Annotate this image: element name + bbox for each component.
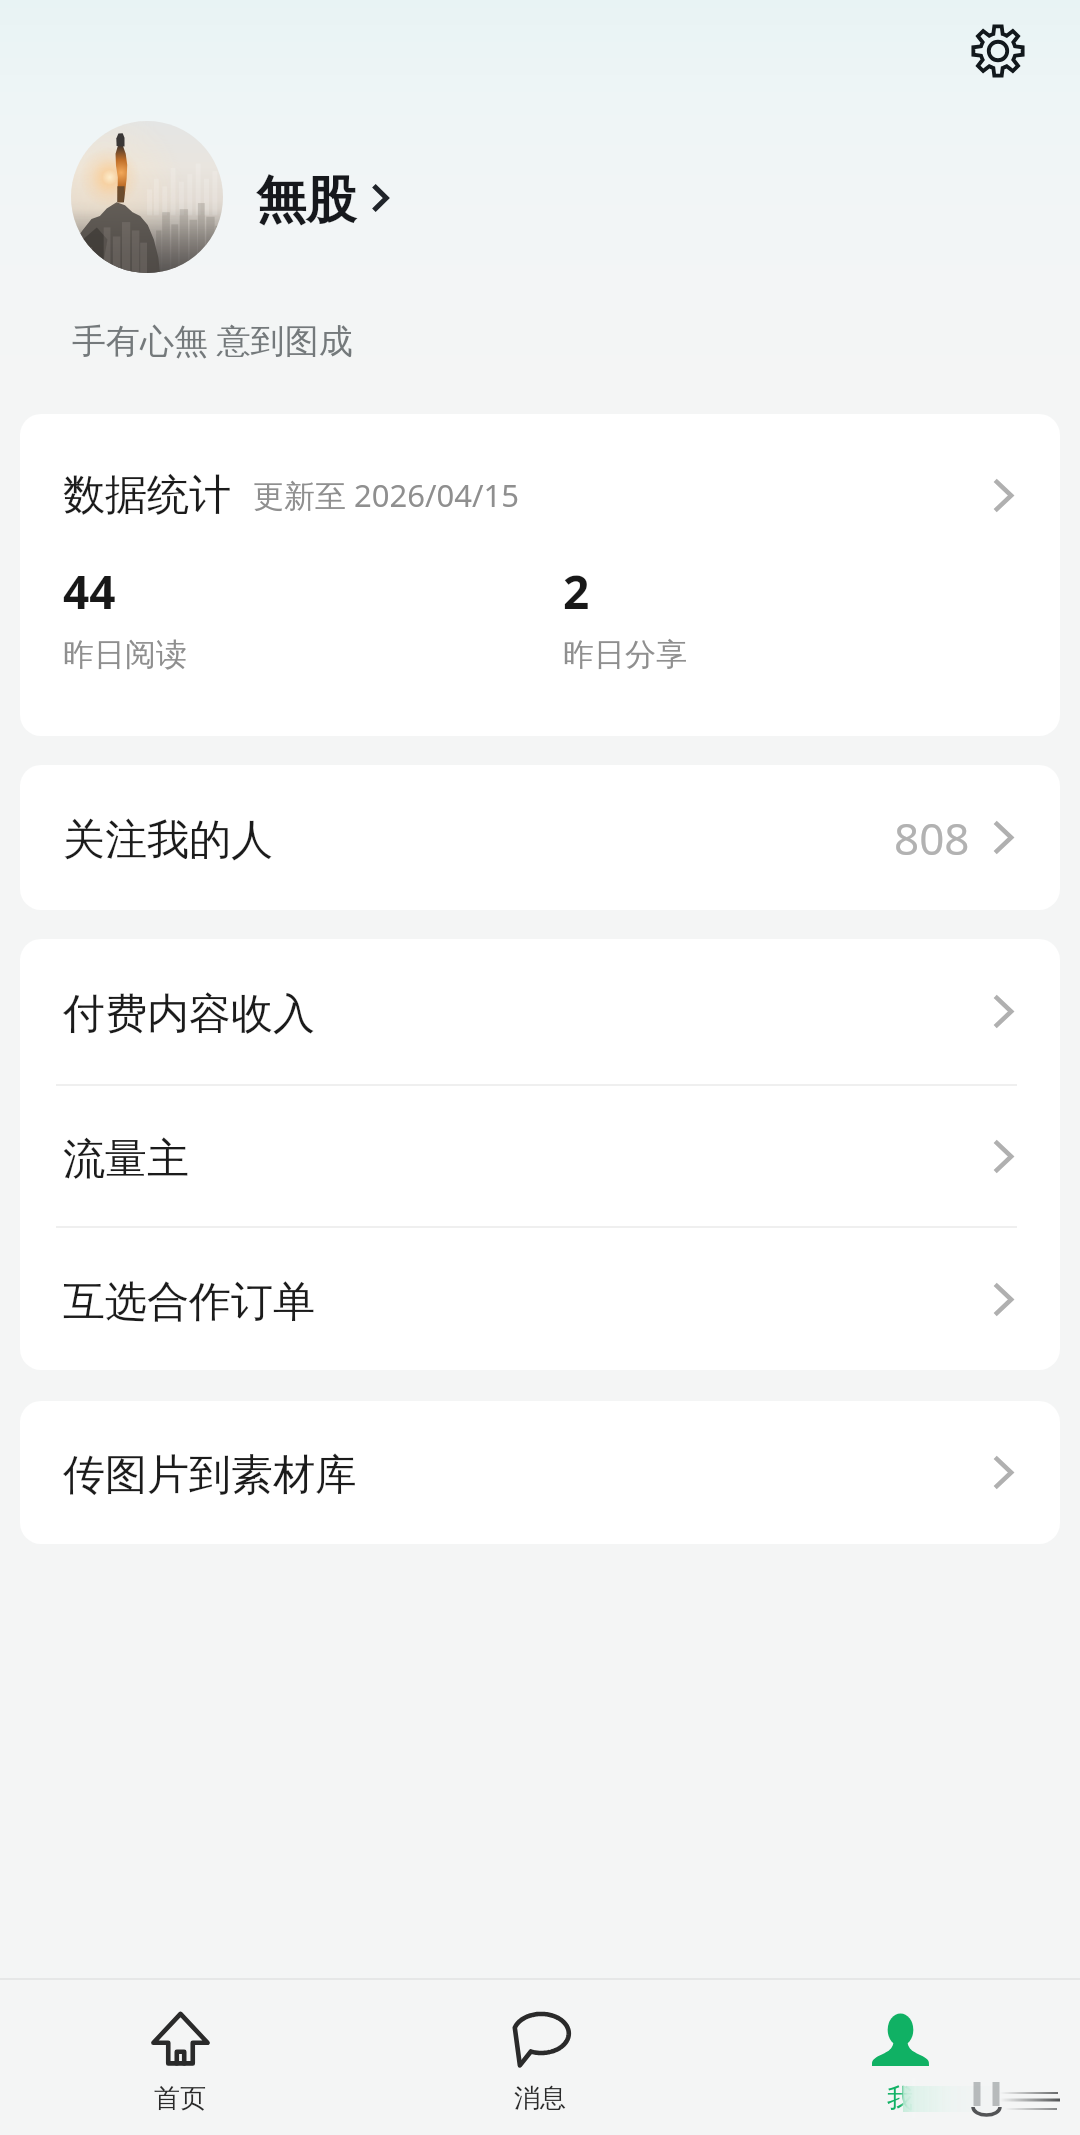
- staticText: 手有心無 意到图成: [72, 317, 353, 363]
- staticText: 付费内容收入: [63, 988, 315, 1041]
- button[interactable]: Settings: [944, 0, 1052, 105]
- button[interactable]: 付费内容收入: [20, 939, 1060, 1084]
- staticText: 首页: [154, 2082, 206, 2115]
- staticText: 流量主: [63, 1133, 189, 1186]
- staticText: 808: [894, 808, 970, 868]
- staticText: 更新至 2026/04/15: [253, 474, 519, 516]
- button[interactable]: 消息: [360, 1980, 720, 2135]
- button[interactable]: 传图片到素材库: [20, 1401, 1060, 1544]
- staticText: 消息: [514, 2082, 566, 2115]
- staticText: 互选合作订单: [63, 1276, 315, 1329]
- staticText: 我: [887, 2082, 913, 2115]
- staticText: 传图片到素材库: [63, 1449, 357, 1502]
- staticText: 2: [563, 560, 590, 623]
- button[interactable]: 流量主: [20, 1086, 1060, 1226]
- button[interactable]: 数据统计: [20, 414, 1060, 576]
- button[interactable]: 关注我的人: [20, 765, 1060, 910]
- staticText: 44: [63, 560, 116, 623]
- staticText: 关注我的人: [63, 814, 273, 867]
- button[interactable]: 我: [720, 1980, 1080, 2135]
- button[interactable]: 無股: [256, 169, 388, 232]
- button[interactable]: 首页: [0, 1980, 360, 2135]
- button[interactable]: 互选合作订单: [20, 1228, 1060, 1370]
- staticText: 昨日阅读: [63, 635, 187, 674]
- staticText: 昨日分享: [563, 635, 687, 674]
- button[interactable]: Profile photo: [71, 121, 223, 273]
- staticText: 数据统计: [63, 469, 231, 522]
- staticText: 無股: [256, 169, 356, 232]
